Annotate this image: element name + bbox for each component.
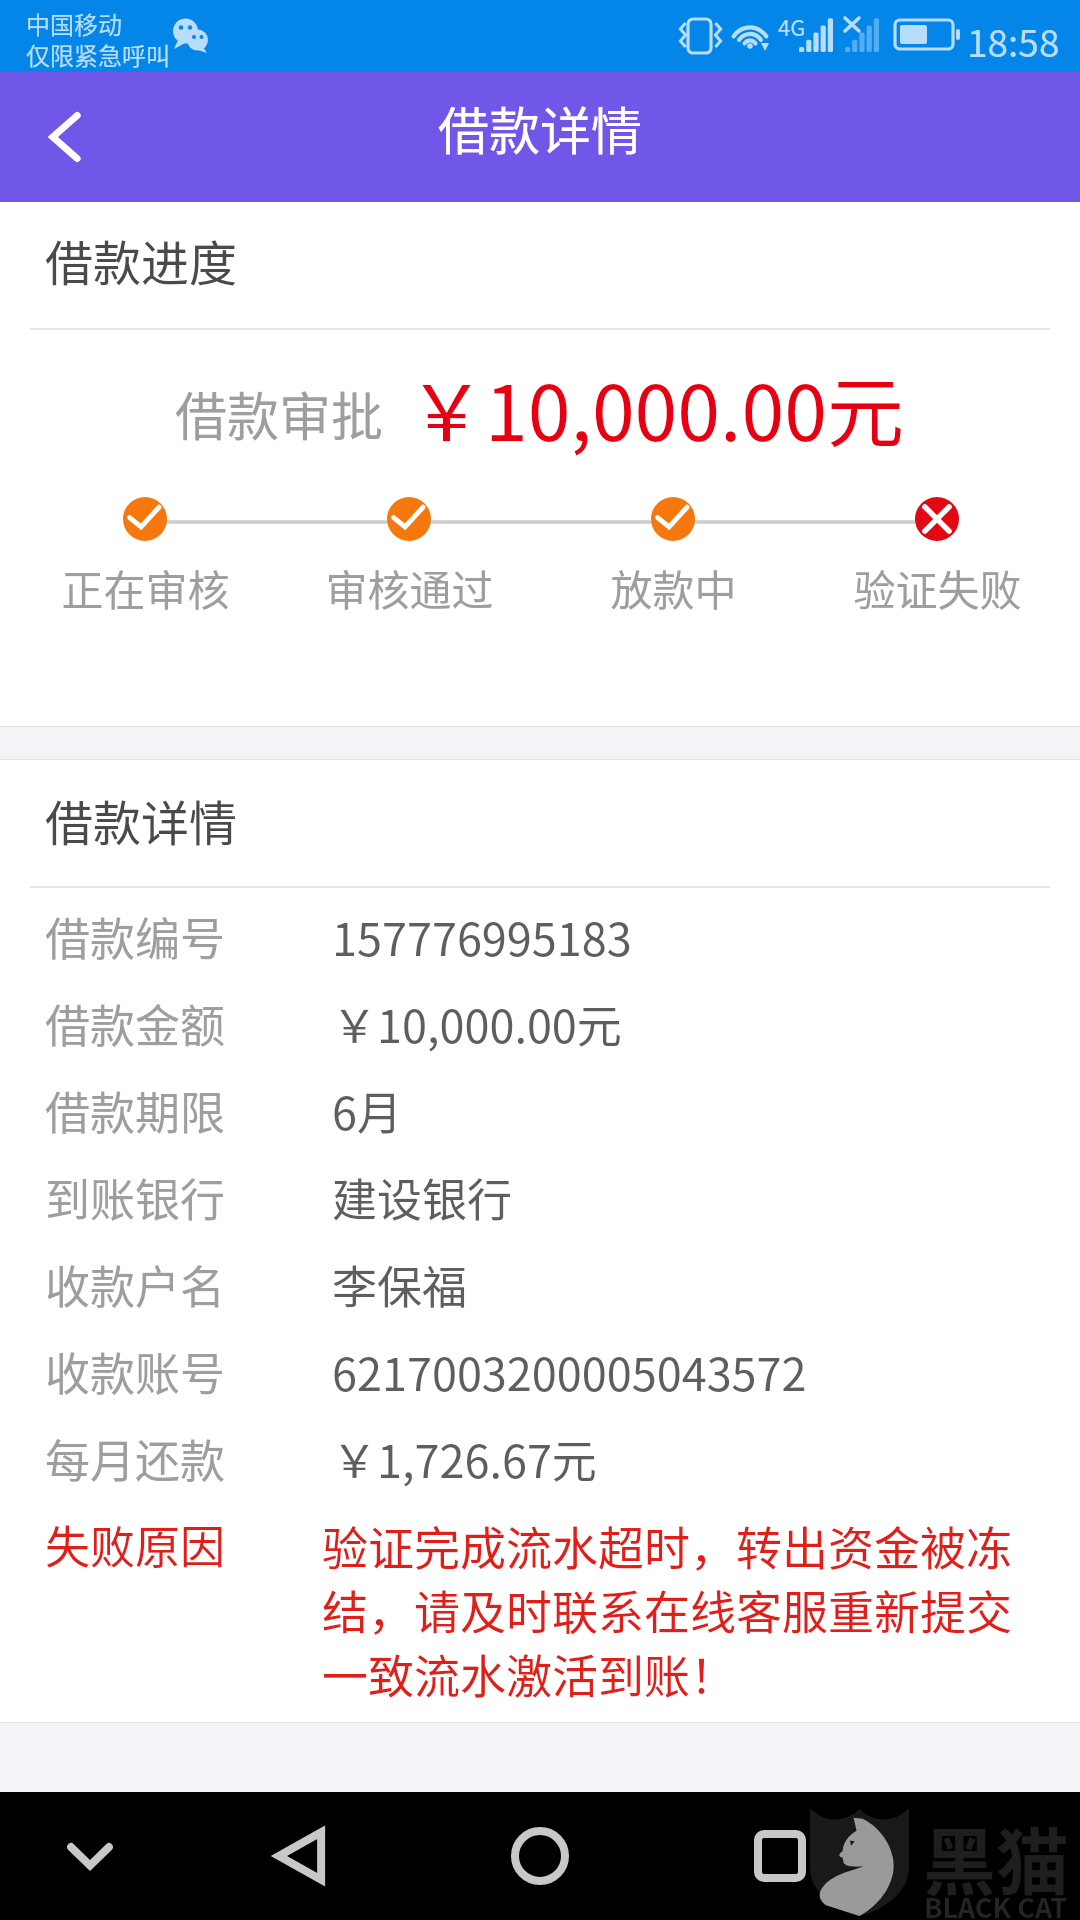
staticText: 157776995183 — [332, 904, 632, 969]
staticText: ￥1,726.67元 — [332, 1426, 597, 1491]
staticText: 正在审核 — [61, 557, 230, 618]
staticText: 中国移动 — [26, 6, 122, 41]
button[interactable]: Recents — [720, 1796, 840, 1916]
staticText: 收款户名 — [45, 1252, 226, 1317]
staticText: 每月还款 — [45, 1426, 226, 1491]
staticText: ￥10,000.00元 — [332, 991, 622, 1056]
staticText: 放款中 — [610, 557, 737, 618]
staticText: 借款进度 — [45, 225, 238, 295]
staticText: 失败原因 — [45, 1512, 226, 1577]
staticText: 借款审批 — [175, 376, 384, 451]
staticText: 黑猫 — [923, 1804, 1069, 1910]
staticText: 收款账号 — [45, 1339, 226, 1404]
staticText: 到账银行 — [45, 1165, 226, 1230]
staticText: 借款详情 — [45, 785, 238, 855]
staticText: 4G — [778, 10, 806, 42]
staticText: 验证完成流水超时，转出资金被冻结，请及时联系在线客服重新提交一致流水激活到账！ — [322, 1512, 1022, 1707]
button[interactable]: Hide keyboard — [30, 1796, 150, 1916]
staticText: 18:58 — [967, 14, 1060, 68]
staticText: 6217003200005043572 — [332, 1339, 807, 1404]
staticText: 仅限紧急呼叫 — [26, 37, 170, 72]
staticText: 借款详情 — [438, 91, 643, 165]
staticText: 验证失败 — [853, 557, 1022, 618]
staticText: 借款金额 — [45, 991, 226, 1056]
staticText: 6月 — [332, 1078, 402, 1143]
staticText: 借款编号 — [45, 904, 226, 969]
staticText: 建设银行 — [332, 1165, 513, 1230]
staticText: ￥10,000.00元 — [408, 352, 904, 463]
staticText: BLACK CAT — [924, 1887, 1068, 1920]
button[interactable]: Back — [22, 94, 108, 180]
button[interactable]: Home — [480, 1796, 600, 1916]
staticText: 李保福 — [332, 1252, 468, 1317]
staticText: 借款期限 — [45, 1078, 226, 1143]
button[interactable]: Back — [240, 1796, 360, 1916]
staticText: 审核通过 — [325, 557, 494, 618]
